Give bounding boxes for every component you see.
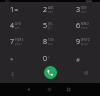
button[interactable]: 7: [0, 34, 28, 50]
staticText: WXYZ: [81, 38, 90, 42]
button[interactable]: *: [0, 51, 28, 67]
staticText: 0: [43, 54, 47, 64]
button[interactable]: Add contact: [7, 68, 19, 80]
staticText: 1: [10, 5, 14, 15]
button[interactable]: 9: [62, 34, 94, 50]
button[interactable]: 1: [0, 2, 28, 18]
staticText: mno: [81, 26, 88, 30]
button[interactable]: Call: [44, 66, 57, 79]
staticText: MNO: [81, 22, 89, 26]
button[interactable]: 2: [29, 2, 61, 18]
staticText: JKL: [48, 22, 54, 26]
staticText: ghi: [15, 26, 21, 30]
staticText: def: [81, 10, 87, 14]
staticText: ABC: [48, 6, 55, 10]
staticText: 3: [76, 5, 80, 15]
staticText: 6: [76, 21, 80, 31]
staticText: PQRS: [15, 38, 24, 42]
button[interactable]: 6: [62, 18, 94, 34]
staticText: 8: [43, 37, 47, 47]
staticText: pqrs: [15, 42, 23, 46]
staticText: 7: [10, 37, 14, 47]
staticText: 4: [10, 21, 14, 31]
staticText: GHI: [15, 22, 22, 26]
staticText: 9: [76, 37, 80, 47]
button[interactable]: 0: [29, 51, 61, 67]
button[interactable]: #: [62, 51, 94, 67]
button[interactable]: 8: [29, 34, 61, 50]
staticText: DEF: [81, 6, 88, 10]
staticText: +: [48, 55, 50, 59]
staticText: #: [76, 55, 80, 63]
button[interactable]: Backspace: [81, 67, 93, 79]
staticText: jkl: [48, 26, 52, 30]
staticText: 5: [43, 21, 47, 31]
staticText: abc: [48, 10, 54, 14]
button[interactable]: 5: [29, 18, 61, 34]
staticText: TUV: [48, 38, 55, 42]
staticText: tuv: [48, 42, 54, 46]
staticText: *: [10, 55, 14, 63]
button[interactable]: 4: [0, 18, 28, 34]
staticText: 2: [43, 5, 47, 15]
staticText: wxyz: [81, 42, 89, 46]
button[interactable]: 3: [62, 2, 94, 18]
